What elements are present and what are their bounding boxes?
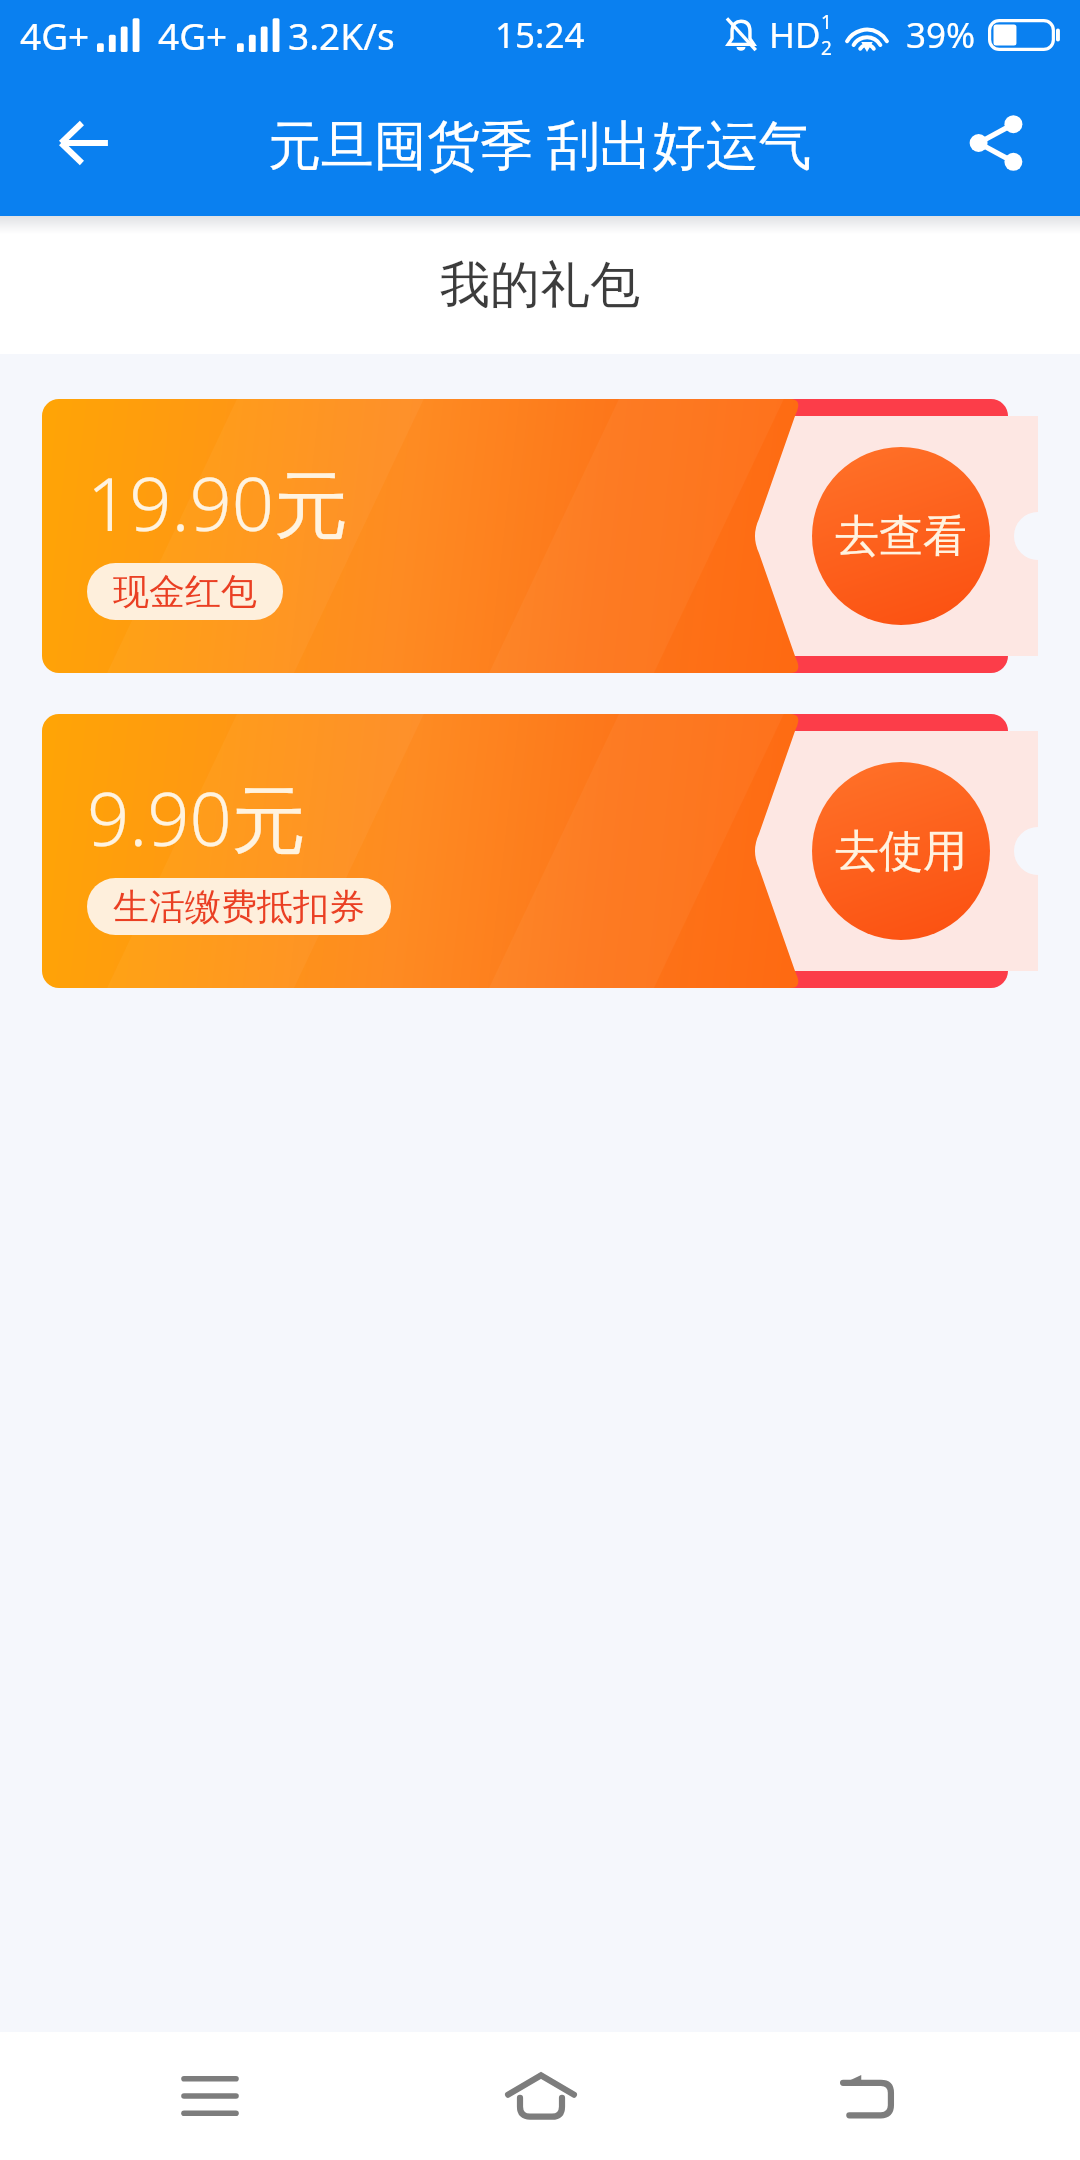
staticText: 现金红包 xyxy=(113,569,257,614)
staticText: HD xyxy=(769,11,821,59)
button[interactable]: 9.90元 xyxy=(42,714,1038,988)
staticText: 元旦囤货季 刮出好运气 xyxy=(268,107,812,179)
staticText: 15:24 xyxy=(495,11,585,59)
staticText: 去查看 xyxy=(835,509,967,564)
button[interactable]: Recent apps xyxy=(130,2032,290,2160)
staticText: 3.2K/s xyxy=(288,10,395,60)
staticText: 4G+ xyxy=(20,10,90,60)
button[interactable]: Back xyxy=(0,70,168,216)
staticText: 39% xyxy=(906,11,976,59)
staticText: 生活缴费抵扣券 xyxy=(113,884,365,929)
button[interactable]: Home xyxy=(461,2032,621,2160)
button[interactable]: Share xyxy=(912,70,1080,216)
staticText: 4G+ xyxy=(158,10,228,60)
staticText: 1 xyxy=(821,9,832,35)
button[interactable]: 去使用 xyxy=(812,762,990,940)
staticText: 19.90元 xyxy=(87,452,349,553)
staticText: 2 xyxy=(821,35,832,61)
staticText: 9.90元 xyxy=(87,767,306,868)
button[interactable]: Back xyxy=(787,2032,947,2160)
staticText: 我的礼包 xyxy=(440,254,640,317)
button[interactable]: 19.90元 xyxy=(42,399,1038,673)
button[interactable]: 去查看 xyxy=(812,447,990,625)
staticText: 去使用 xyxy=(835,824,967,879)
